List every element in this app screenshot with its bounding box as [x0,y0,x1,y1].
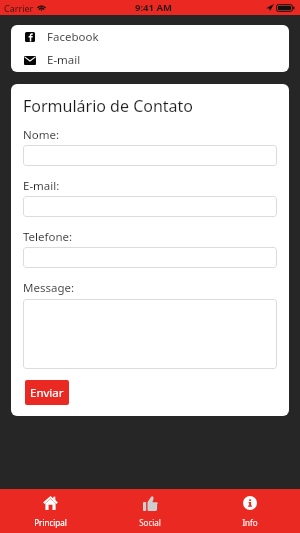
button[interactable] [23,299,277,369]
button[interactable]: Principal [0,489,100,533]
staticText: 9:41 AM [135,1,172,14]
staticText: Nome: [23,127,60,143]
button[interactable] [23,247,277,268]
staticText: Info [242,517,258,528]
staticText: Carrier [4,2,34,14]
other: Location [266,4,274,11]
other: Battery [276,4,295,12]
staticText: Enviar [30,385,64,401]
button[interactable]: E-mail [11,48,289,72]
button[interactable] [23,196,277,217]
staticText: Formulário de Contato [23,95,194,117]
button[interactable]: Info [200,489,300,533]
button[interactable]: Enviar [25,380,69,405]
staticText: E-mail [47,52,81,68]
staticText: Social [139,517,161,528]
staticText: Telefone: [23,229,73,245]
staticText: Principal [34,517,67,528]
button[interactable]: Facebook [11,25,289,48]
other: Wi-Fi [36,3,47,11]
staticText: Message: [23,280,75,296]
button[interactable]: Social [100,489,200,533]
button[interactable] [23,145,277,166]
staticText: E-mail: [23,178,60,194]
staticText: Facebook [47,29,99,45]
